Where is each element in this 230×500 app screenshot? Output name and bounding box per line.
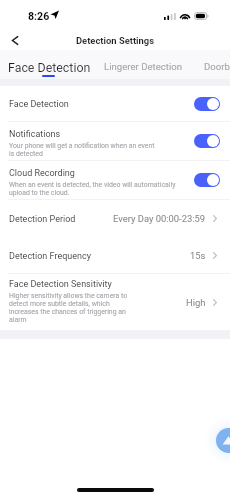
staticText: 15s [190,250,206,261]
button[interactable]: Detection Period [0,200,230,237]
staticText: High [186,297,206,308]
staticText: Cloud Recording [9,168,75,179]
button[interactable]: Face Detection [8,60,91,75]
button[interactable]: Lingerer Detection [104,61,183,72]
staticText: Face Detection Sensitivity [9,279,112,290]
staticText: Detection Settings [76,35,155,46]
button[interactable]: Alarm [216,428,230,453]
button[interactable]: Notifications [0,122,230,160]
staticText: When an event is detected, the video wil… [9,181,179,197]
button[interactable]: Back [5,30,25,50]
staticText: Detection Period [9,214,76,225]
button[interactable]: Cloud Recording [0,161,230,199]
staticText: Lingerer Detection [104,61,183,72]
button[interactable]: Face Detection Sensitivity [0,274,230,330]
staticText: Detection Frequency [9,251,91,262]
button[interactable]: Detection Frequency [0,237,230,273]
button[interactable]: Toggle [194,97,220,111]
button[interactable]: Doorbell [204,61,230,72]
staticText: Face Detection [9,99,69,110]
staticText: Notifications [9,129,61,140]
button[interactable]: Toggle [194,173,220,187]
staticText: Doorbell [204,61,230,72]
button[interactable]: Toggle [194,134,220,148]
staticText: Face Detection [8,60,91,75]
staticText: Every Day 00:00-23:59 [113,213,206,224]
staticText: Higher sensitivity allows the camera to … [9,292,133,324]
staticText: 8:26 [28,10,50,22]
button[interactable]: Face Detection [0,86,230,121]
staticText: Your phone will get a notification when … [9,142,161,158]
